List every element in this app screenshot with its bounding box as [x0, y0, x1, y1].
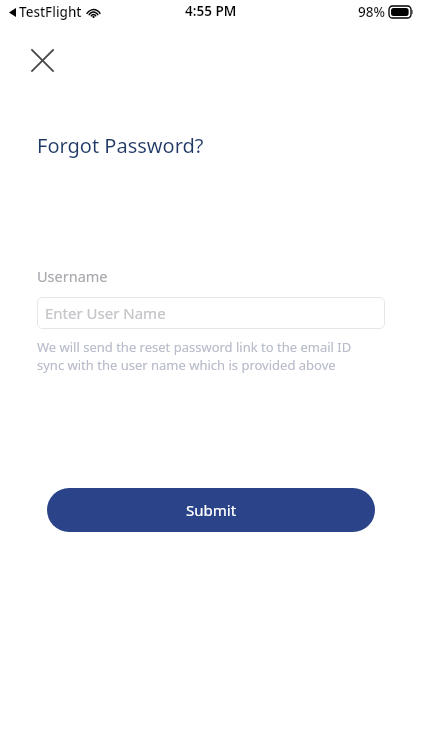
staticText: 98%: [358, 3, 385, 21]
button[interactable]: Close: [20, 38, 64, 82]
button[interactable]: Submit: [47, 488, 375, 532]
staticText: Forgot Password?: [37, 132, 204, 159]
button[interactable]: Enter User Name: [37, 297, 385, 329]
staticText: 4:55 PM: [185, 2, 237, 20]
staticText: Submit: [186, 500, 237, 520]
staticText: Enter User Name: [45, 303, 166, 323]
staticText: TestFlight: [19, 3, 82, 21]
staticText: Username: [37, 266, 108, 286]
staticText: We will send the reset password link to …: [37, 338, 352, 374]
